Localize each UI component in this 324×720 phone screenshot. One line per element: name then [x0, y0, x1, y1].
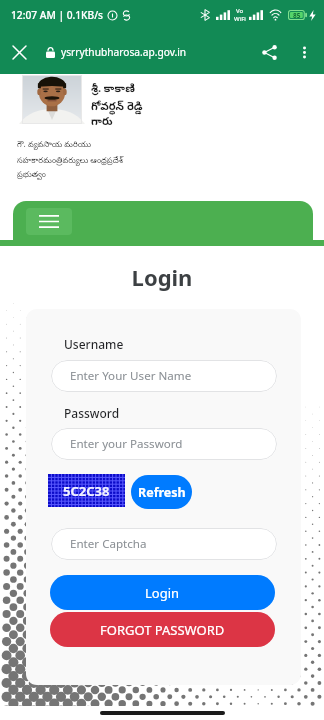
button[interactable]: FORGOT PASSWORD: [50, 612, 275, 647]
staticText: Login: [145, 584, 180, 602]
button[interactable]: Enter Captcha: [51, 528, 277, 560]
button[interactable]: Refresh: [131, 475, 192, 509]
staticText: ysrrythubharosa.ap.gov.in: [61, 45, 187, 59]
button[interactable]: Enter your Password: [51, 428, 277, 460]
button[interactable]: Enter Your User Name: [51, 360, 277, 392]
staticText: Vo: [236, 7, 244, 15]
staticText: 5C2C38: [63, 482, 110, 500]
button[interactable]: Share: [251, 34, 287, 70]
staticText: Login: [0, 262, 324, 292]
staticText: WiFi: [234, 15, 246, 23]
staticText: Refresh: [138, 484, 186, 501]
staticText: గౌ. వ్యవసాయ మరియు సహకారమంత్రివర్యులు ఆంధ…: [17, 138, 123, 181]
staticText: 12:07 AM | 0.1KB/s: [11, 8, 104, 22]
staticText: Enter your Password: [70, 436, 183, 452]
staticText: Password: [64, 405, 120, 421]
staticText: శ్రీ. కాకాణి గోవర్ధన్ రెడ్డి గారు: [91, 80, 143, 131]
button[interactable]: Menu: [26, 208, 72, 235]
staticText: Enter Your User Name: [70, 368, 192, 384]
staticText: Enter Captcha: [70, 536, 147, 552]
staticText: Username: [64, 336, 124, 352]
button[interactable]: More options: [287, 35, 321, 69]
button[interactable]: Close tab: [0, 33, 38, 71]
staticText: 85: [293, 11, 301, 20]
staticText: FORGOT PASSWORD: [100, 621, 225, 639]
button[interactable]: Login: [50, 575, 275, 610]
